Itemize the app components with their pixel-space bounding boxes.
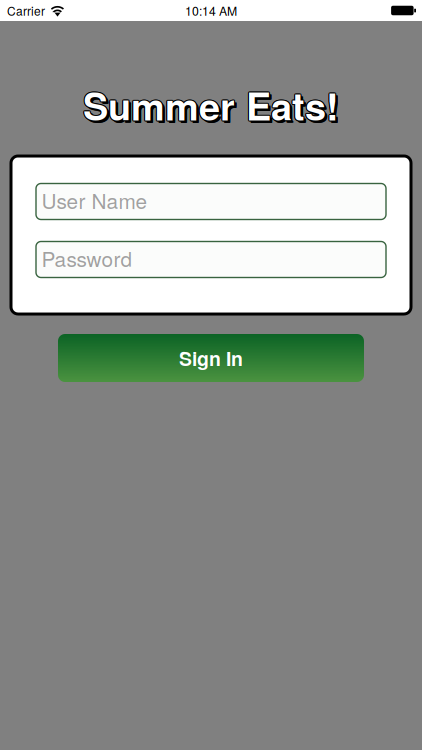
staticText: Summer Eats!	[84, 78, 340, 132]
staticText: Summer Eats!	[85, 80, 341, 134]
staticText: Summer Eats!	[84, 77, 340, 131]
staticText: Summer Eats!	[82, 78, 338, 132]
staticText: Carrier	[7, 2, 45, 19]
button[interactable]: Sign In	[58, 334, 364, 382]
staticText: Summer Eats!	[82, 79, 338, 133]
staticText: Sign In	[179, 344, 243, 372]
staticText: Summer Eats!	[83, 78, 339, 132]
staticText: Password	[41, 243, 132, 273]
staticText: Summer Eats!	[82, 77, 338, 131]
staticText: User Name	[41, 185, 147, 215]
button[interactable]: Password	[36, 241, 386, 277]
staticText: 10:14 AM	[185, 2, 237, 19]
staticText: Summer Eats!	[85, 80, 341, 134]
staticText: Summer Eats!	[84, 79, 340, 133]
staticText: Summer Eats!	[85, 80, 341, 134]
staticText: Summer Eats!	[83, 77, 339, 131]
staticText: Summer Eats!	[83, 79, 339, 133]
button[interactable]: User Name	[36, 183, 386, 219]
